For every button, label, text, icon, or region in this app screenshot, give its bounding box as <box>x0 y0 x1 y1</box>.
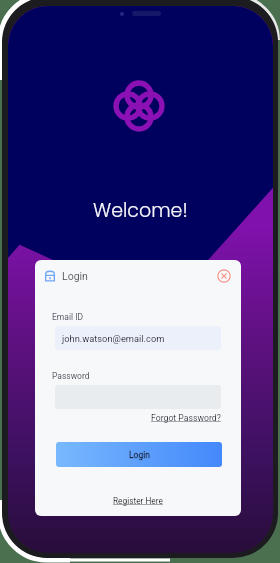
staticText: john.watson@email.com <box>62 333 165 344</box>
button[interactable]: Forgot Password? <box>151 413 221 423</box>
button[interactable]: Login <box>56 442 222 467</box>
staticText: Email ID <box>52 312 84 322</box>
button[interactable]: Register Here <box>113 496 163 506</box>
staticText: Password <box>52 371 90 381</box>
button[interactable]: Login <box>45 266 88 286</box>
button[interactable]: Close <box>217 269 231 283</box>
staticText: Welcome! <box>93 197 188 224</box>
staticText: Login <box>62 270 88 282</box>
button[interactable]: john.watson@email.com <box>55 326 221 350</box>
staticText: Login <box>129 450 150 460</box>
